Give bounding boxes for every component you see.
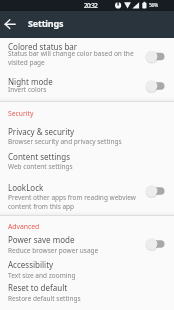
staticText: 20:32 [84, 1, 98, 9]
button[interactable] [0, 11, 27, 38]
staticText: LookLock [8, 182, 44, 193]
staticText: Security [8, 109, 34, 118]
button[interactable] [0, 38, 174, 70]
staticText: Power save mode [8, 234, 75, 245]
staticText: Privacy & security [8, 126, 75, 137]
staticText: Prevent other apps from reading webview [8, 193, 136, 202]
button[interactable] [0, 176, 174, 211]
staticText: 56% [149, 2, 158, 9]
staticText: Accessibility [8, 259, 54, 270]
staticText: Restore default settings [8, 294, 81, 303]
staticText: Settings [28, 17, 64, 29]
button[interactable] [0, 120, 174, 146]
staticText: Browser security and privacy settings [8, 137, 122, 146]
staticText: Web content settings [8, 162, 73, 171]
button[interactable] [0, 280, 174, 305]
button[interactable] [0, 257, 174, 280]
button[interactable] [0, 146, 174, 176]
staticText: Content settings [8, 151, 71, 162]
staticText: Advanced [8, 222, 40, 231]
staticText: Invert colors [8, 85, 47, 94]
staticText: Text size and zooming [8, 271, 76, 280]
staticText: Reduce browser power usage [8, 246, 99, 255]
staticText: Status bar will change color based on th… [8, 49, 134, 58]
button[interactable] [0, 70, 174, 97]
staticText: Night mode [8, 76, 53, 87]
button[interactable] [0, 228, 174, 257]
staticText: content from this app [8, 202, 75, 211]
staticText: Reset to default [8, 282, 68, 293]
staticText: visited page [8, 58, 45, 67]
staticText: Colored status bar [8, 41, 78, 52]
